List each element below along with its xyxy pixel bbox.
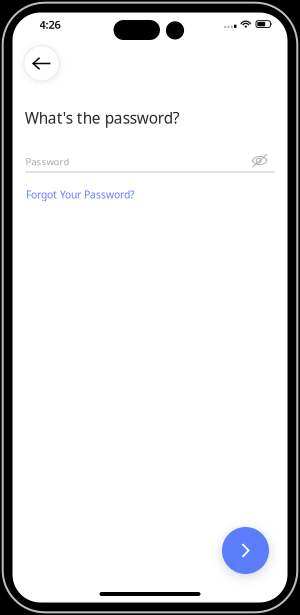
button[interactable]: Continue — [222, 527, 269, 574]
button[interactable]: Forgot Your Password? — [26, 187, 134, 201]
button[interactable]: Back — [24, 46, 59, 81]
staticText: Forgot Your Password? — [26, 187, 134, 201]
staticText: What's the password? — [25, 107, 180, 128]
staticText: Password — [25, 155, 69, 168]
staticText: 4:26 — [39, 17, 60, 32]
button[interactable]: Show password — [249, 151, 271, 170]
